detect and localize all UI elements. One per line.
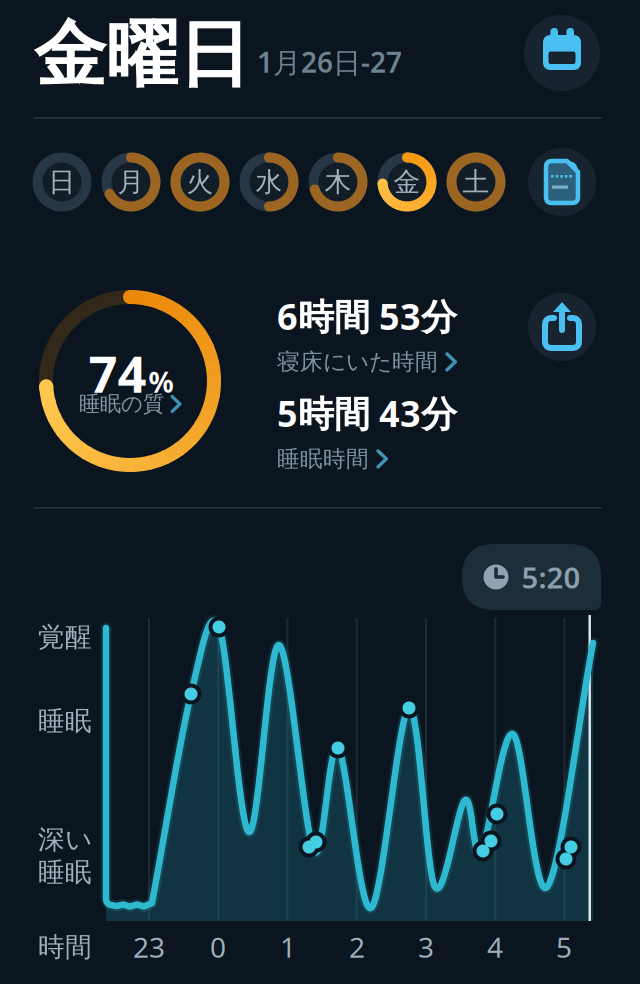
button[interactable]: 水 xyxy=(239,152,299,212)
staticText: 74 xyxy=(88,339,146,407)
staticText: 5:20 xyxy=(521,557,580,596)
staticText: 睡眠 xyxy=(38,705,92,737)
staticText: 月 xyxy=(117,166,144,198)
button[interactable]: 月 xyxy=(101,152,161,212)
staticText: 寝床にいた時間 xyxy=(277,348,438,376)
staticText: 深い xyxy=(38,823,92,856)
staticText: 水 xyxy=(255,166,282,198)
staticText: % xyxy=(148,363,173,400)
button[interactable]: 土 xyxy=(446,152,506,212)
staticText: 23 xyxy=(133,928,165,966)
button[interactable]: 火 xyxy=(170,152,230,212)
staticText: 火 xyxy=(186,166,213,198)
staticText: 0 xyxy=(210,928,226,966)
staticText: 木 xyxy=(324,166,351,198)
button[interactable] xyxy=(528,148,596,216)
staticText: 時間 xyxy=(38,931,92,963)
button[interactable]: 6時間 53分 xyxy=(277,292,517,376)
button[interactable]: 睡眠の質 xyxy=(79,391,183,417)
staticText: 3 xyxy=(418,928,434,966)
button[interactable] xyxy=(524,15,600,91)
staticText: 睡眠時間 xyxy=(277,445,369,473)
staticText: 睡眠 xyxy=(38,856,92,889)
staticText: 6時間 53分 xyxy=(277,292,457,340)
staticText: 5 xyxy=(556,928,572,966)
button[interactable] xyxy=(528,293,596,361)
staticText: 覚醒 xyxy=(38,621,92,653)
staticText: 5時間 43分 xyxy=(277,389,457,437)
staticText: 金 xyxy=(393,166,420,198)
staticText: 睡眠の質 xyxy=(79,391,164,417)
staticText: 土 xyxy=(462,166,489,198)
staticText: 金曜日 xyxy=(34,11,250,99)
button[interactable]: 木 xyxy=(308,152,368,212)
button[interactable]: 金 xyxy=(377,152,437,212)
staticText: 1月26日-27 xyxy=(257,43,402,81)
staticText: 2 xyxy=(349,928,365,966)
staticText: 日 xyxy=(48,166,75,198)
staticText: 1 xyxy=(280,928,296,966)
button[interactable]: 5時間 43分 xyxy=(277,389,517,473)
button[interactable]: 日 xyxy=(32,152,92,212)
staticText: 4 xyxy=(487,928,503,966)
